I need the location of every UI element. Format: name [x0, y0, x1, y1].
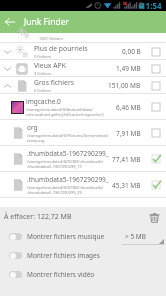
- button[interactable]: Vieux APK: [0, 60, 166, 77]
- staticText: .thumbdata5-1967290299_77: [27, 149, 112, 158]
- button[interactable]: Montrer fichiers musique: [0, 227, 166, 246]
- button[interactable]: Delete: [145, 208, 163, 226]
- staticText: > 5 MB: [125, 232, 146, 241]
- button[interactable]: Montrer fichiers images: [0, 246, 166, 265]
- staticText: Vieux APK: [34, 61, 66, 70]
- staticText: 1,49 MB: [116, 64, 141, 73]
- button[interactable]: Gros fichiers: [0, 77, 166, 94]
- staticText: 0,00 B: [122, 47, 141, 56]
- staticText: Junk Finder: [24, 16, 69, 28]
- button[interactable]: Back: [0, 11, 20, 33]
- staticText: 77,41 MB: [112, 155, 141, 164]
- staticText: Montrer fichiers vidéo: [27, 270, 95, 279]
- staticText: .thumbdata5-1967290299_77: [27, 164, 82, 169]
- button[interactable]: org: [0, 120, 166, 146]
- staticText: 5 fichiers: [34, 88, 51, 93]
- button[interactable]: .thumbdata5-1967290299_29: [0, 172, 166, 198]
- staticText: imgcache.0: [26, 97, 61, 106]
- staticText: À effacer: 122,72 MB: [4, 212, 72, 222]
- staticText: 45,31 MB: [112, 181, 141, 190]
- staticText: Gros fichiers: [34, 78, 74, 87]
- staticText: Plus de pourriels: [34, 44, 88, 53]
- staticText: 6,46 MB: [116, 103, 141, 112]
- staticText: /storage/emulated/0/Android/data/: [26, 107, 93, 112]
- staticText: 1301 fichiers: [39, 36, 63, 41]
- button[interactable]: Select item: [150, 127, 162, 139]
- staticText: .thumbdata5-1967290299_29: [27, 190, 82, 195]
- staticText: 3 fichiers: [34, 71, 51, 76]
- button[interactable]: Select item: [150, 80, 162, 92]
- staticText: /storage/emulated/0/DCIM/.thumbnails/: [27, 185, 104, 190]
- button[interactable]: Select item: [150, 179, 162, 191]
- staticText: com.android.gallery3d/cache/imgcache.0: [26, 112, 104, 117]
- button[interactable]: Montrer fichiers vidéo: [0, 265, 166, 284]
- button[interactable]: Select item: [150, 63, 162, 75]
- staticText: 0 fichiers: [34, 54, 51, 59]
- staticText: 151,00 MB: [108, 81, 141, 90]
- staticText: .thumbdata5-1967290299_29: [27, 175, 112, 184]
- staticText: Montrer fichiers images: [27, 251, 100, 260]
- staticText: /storage/emulated/0/Pictures/Screenshots…: [27, 133, 109, 138]
- staticText: Montrer fichiers musique: [27, 232, 105, 241]
- staticText: 7,91 MB: [116, 129, 141, 138]
- button[interactable]: > 5 MB: [122, 227, 166, 246]
- staticText: 11:54: [141, 0, 162, 11]
- staticText: temp.org: [27, 138, 45, 143]
- button[interactable]: Select item: [150, 153, 162, 165]
- button[interactable]: .thumbdata5-1967290299_77: [0, 146, 166, 172]
- button[interactable]: Select item: [150, 101, 162, 113]
- staticText: org: [27, 123, 38, 132]
- button[interactable]: 1301 fichiers: [0, 33, 166, 43]
- button[interactable]: Plus de pourriels: [0, 43, 166, 60]
- staticText: /storage/emulated/0/DCIM/.thumbnails/: [27, 159, 104, 164]
- button[interactable]: Select item: [150, 46, 162, 58]
- button[interactable]: imgcache.0: [0, 94, 166, 120]
